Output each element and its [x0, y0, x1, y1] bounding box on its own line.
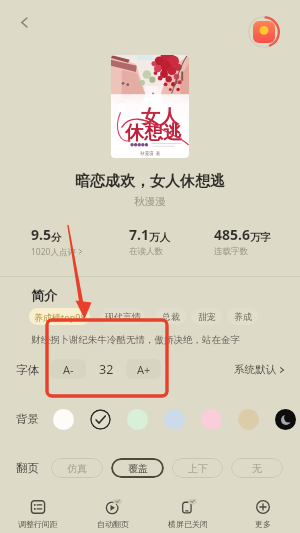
button[interactable]: Background theme 3 — [127, 409, 148, 430]
staticText: 分 — [51, 231, 62, 244]
button[interactable]: Background theme 6 — [238, 409, 259, 430]
staticText: 现代言情 — [105, 311, 141, 322]
button[interactable]: 仿真 — [51, 458, 103, 478]
staticText: 覆盖 — [128, 462, 148, 475]
button[interactable]: Background theme 7 — [275, 409, 296, 430]
staticText: 休想逃 — [125, 121, 182, 145]
staticText: 32 — [99, 361, 114, 378]
button[interactable]: Red packet reward — [248, 16, 280, 48]
staticText: 更多 — [255, 519, 271, 529]
button[interactable]: A- — [50, 359, 86, 379]
staticText: 养成榜top98 — [34, 311, 86, 323]
staticText: 连载字数 — [214, 246, 248, 257]
staticText: 万字 — [250, 231, 271, 244]
button[interactable]: 485.6 — [214, 225, 271, 257]
button[interactable]: 9.5 — [31, 225, 83, 257]
button[interactable]: 养成榜top98 — [29, 308, 90, 325]
button[interactable]: 调整行间距 — [0, 498, 75, 529]
staticText: 字体 — [16, 363, 39, 377]
staticText: 调整行间距 — [18, 519, 58, 529]
button[interactable]: 无 — [231, 458, 283, 478]
staticText: 万人 — [149, 231, 170, 244]
button[interactable]: 现代言情 — [101, 308, 145, 325]
staticText: A- — [63, 362, 74, 377]
button[interactable]: Background theme 2 — [90, 409, 111, 430]
button[interactable]: Background theme 4 — [164, 409, 185, 430]
staticText: 秋漫漫 著 — [140, 150, 161, 156]
button[interactable]: A+ — [126, 359, 161, 379]
staticText: 在读人数 — [129, 246, 163, 257]
staticText: 背景 — [16, 412, 39, 426]
button[interactable]: 养成 — [227, 308, 258, 325]
button[interactable]: 7.1 — [129, 225, 170, 257]
button[interactable]: Background theme 5 — [201, 409, 222, 430]
button[interactable]: 总裁 — [155, 308, 186, 325]
staticText: 财经拐卜谢纪朱牛冷酷无情，傲娇决绝，站在金字 — [31, 334, 240, 346]
staticText: 1020人点评 — [31, 246, 76, 257]
staticText: 女人 — [141, 105, 179, 129]
staticText: 养成 — [234, 311, 252, 322]
staticText: 自动翻页 — [97, 519, 129, 529]
staticText: 系统默认 — [234, 363, 276, 376]
button[interactable]: 甜宠 — [191, 308, 222, 325]
button[interactable]: Back — [9, 8, 38, 37]
staticText: 简介 — [31, 287, 57, 303]
staticText: 横屏已关闭 — [168, 519, 208, 529]
button[interactable]: 更多 — [225, 498, 300, 529]
staticText: 上下 — [188, 462, 208, 475]
staticText: 总裁 — [162, 311, 180, 322]
staticText: 7.1 — [129, 225, 149, 244]
staticText: 暗恋成欢，女人休想逃 — [0, 172, 300, 191]
button[interactable]: 上下 — [172, 458, 223, 478]
staticText: A+ — [137, 362, 151, 377]
button[interactable]: 系统默认 — [234, 363, 285, 376]
staticText: 9.5 — [31, 225, 51, 244]
staticText: 485.6 — [214, 225, 250, 244]
button[interactable]: 横屏已关闭 — [150, 498, 225, 529]
button[interactable]: Background theme 1 — [53, 409, 74, 430]
button[interactable]: 覆盖 — [111, 458, 164, 478]
staticText: 无 — [252, 462, 262, 475]
button[interactable]: 自动翻页 — [75, 498, 150, 529]
staticText: 仿真 — [67, 462, 87, 475]
staticText: 甜宠 — [198, 311, 216, 322]
staticText: 秋漫漫 — [0, 195, 300, 208]
staticText: 翻页 — [16, 461, 39, 475]
